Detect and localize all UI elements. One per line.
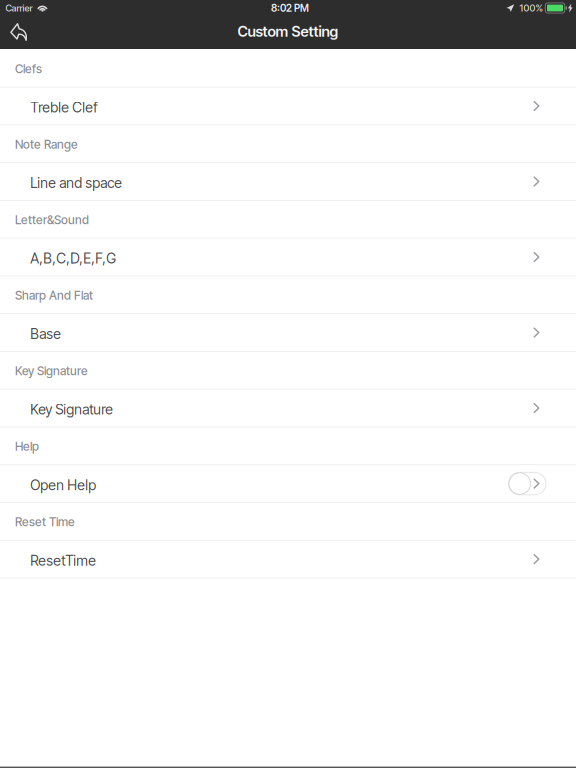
staticText: Clefs [15,62,42,76]
button[interactable]: Key Signature [0,390,576,427]
staticText: Reset Time [15,515,75,529]
staticText: 100% [519,2,543,14]
staticText: Letter&Sound [15,213,89,227]
staticText: ResetTime [30,552,96,569]
staticText: Help [15,439,39,454]
button[interactable]: Line and space [0,163,576,201]
staticText: A,B,C,D,E,F,G [30,250,116,267]
button[interactable]: Base [0,314,576,352]
button[interactable]: Open Help [0,465,576,503]
staticText: Open Help [30,476,96,493]
button[interactable]: Back [0,20,39,49]
staticText: Carrier [5,2,32,14]
staticText: Treble Clef [30,99,97,116]
staticText: Key Signature [15,364,88,378]
staticText: Note Range [15,137,78,152]
staticText: Sharp And Flat [15,288,93,303]
staticText: 8:02 PM [271,2,309,14]
staticText: Base [30,325,61,342]
button[interactable]: ResetTime [0,541,576,578]
staticText: Line and space [30,174,122,191]
staticText: Custom Setting [237,22,338,40]
staticText: Key Signature [30,401,113,418]
button[interactable]: Treble Clef [0,87,576,125]
button[interactable]: A,B,C,D,E,F,G [0,238,576,276]
